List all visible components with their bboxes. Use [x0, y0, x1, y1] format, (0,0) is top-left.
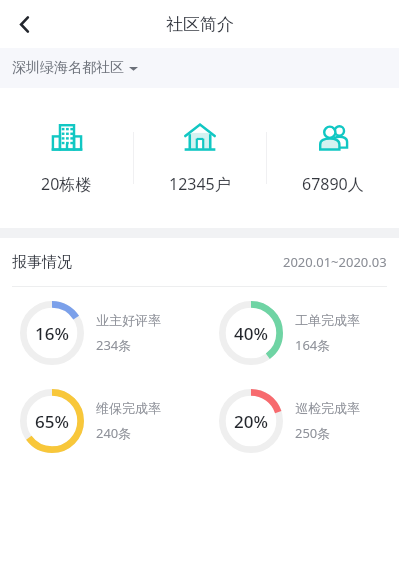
staticText: 20%: [234, 410, 268, 433]
button[interactable]: 16%: [0, 301, 199, 365]
button[interactable]: Households: [134, 88, 266, 228]
button[interactable]: 40%: [199, 301, 399, 365]
staticText: 67890人: [302, 173, 364, 195]
staticText: 16%: [35, 322, 69, 345]
staticText: 巡检完成率: [295, 400, 360, 416]
staticText: 2020.01~2020.03: [283, 253, 387, 271]
staticText: 深圳绿海名都社区: [12, 59, 124, 77]
staticText: 250条: [295, 424, 331, 442]
button[interactable]: 深圳绿海名都社区: [0, 48, 399, 88]
staticText: 维保完成率: [96, 400, 161, 416]
staticText: 240条: [96, 424, 132, 442]
staticText: 业主好评率: [96, 312, 161, 328]
button[interactable]: Back: [3, 3, 45, 45]
button[interactable]: Buildings: [0, 88, 133, 228]
staticText: 40%: [234, 322, 268, 345]
button[interactable]: 65%: [0, 389, 199, 453]
staticText: 社区简介: [166, 14, 234, 35]
other: Buildings: [51, 122, 83, 154]
staticText: 工单完成率: [295, 312, 360, 328]
button[interactable]: Residents: [267, 88, 399, 228]
staticText: 报事情况: [12, 253, 72, 272]
other: Residents: [317, 122, 349, 154]
staticText: 12345户: [169, 173, 231, 195]
staticText: 65%: [35, 410, 69, 433]
staticText: 234条: [96, 336, 132, 354]
other: Households: [184, 122, 216, 154]
staticText: 164条: [295, 336, 331, 354]
button[interactable]: 20%: [199, 389, 399, 453]
staticText: 20栋楼: [41, 173, 92, 195]
